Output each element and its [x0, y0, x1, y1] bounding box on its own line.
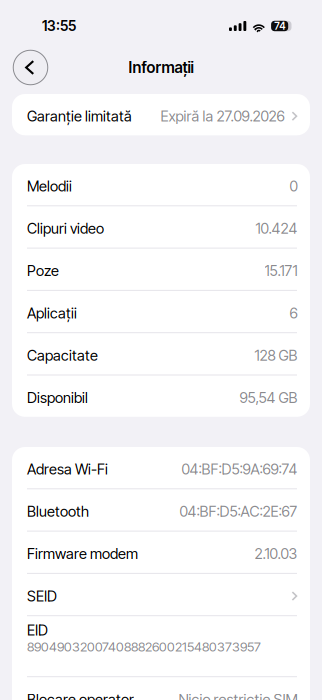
- button[interactable]: Adresa Wi-Fi: [12, 447, 310, 488]
- button[interactable]: Aplicații: [12, 291, 310, 332]
- staticText: 10.424: [255, 220, 297, 237]
- button[interactable]: Firmware modem: [12, 532, 310, 573]
- staticText: Melodii: [27, 177, 72, 195]
- button[interactable]: Clipuri video: [12, 206, 310, 248]
- staticText: Clipuri video: [27, 220, 104, 237]
- button[interactable]: SEID: [12, 574, 310, 615]
- staticText: 95,54 GB: [239, 389, 297, 406]
- staticText: SEID: [27, 587, 57, 605]
- staticText: Poze: [27, 262, 59, 280]
- staticText: Informații: [128, 58, 193, 77]
- staticText: 6: [289, 304, 297, 322]
- staticText: Expiră la 27.09.2026: [160, 107, 284, 125]
- staticText: Garanție limitată: [27, 107, 132, 125]
- staticText: EID: [27, 621, 48, 639]
- staticText: 15.171: [264, 262, 297, 280]
- staticText: 0: [289, 177, 297, 195]
- button[interactable]: Poze: [12, 249, 310, 290]
- staticText: Bluetooth: [27, 503, 89, 520]
- button[interactable]: Bluetooth: [12, 489, 310, 531]
- button[interactable]: Blocare operator: [12, 677, 310, 700]
- button[interactable]: Disponibil: [12, 375, 310, 417]
- staticText: Aplicații: [27, 304, 77, 322]
- staticText: Firmware modem: [27, 545, 138, 563]
- staticText: 04:BF:D5:9A:69:74: [181, 460, 297, 478]
- staticText: 89049032007408882600215480373957: [27, 639, 261, 655]
- staticText: Adresa Wi-Fi: [27, 460, 108, 478]
- button[interactable]: Melodii: [12, 164, 310, 205]
- button[interactable]: Garanție limitată: [12, 94, 310, 135]
- staticText: 04:BF:D5:AC:2E:67: [179, 503, 297, 520]
- button[interactable]: Capacitate: [12, 333, 310, 374]
- staticText: 74: [274, 20, 285, 32]
- staticText: 128 GB: [254, 346, 297, 364]
- button[interactable]: Back: [10, 47, 50, 87]
- staticText: 2.10.03: [254, 545, 297, 563]
- button[interactable]: EID: [12, 616, 310, 676]
- staticText: Blocare operator: [27, 690, 134, 700]
- staticText: 13:55: [42, 17, 76, 34]
- staticText: Nicio restricție SIM: [178, 690, 297, 700]
- staticText: Capacitate: [27, 346, 98, 364]
- staticText: Disponibil: [27, 389, 88, 406]
